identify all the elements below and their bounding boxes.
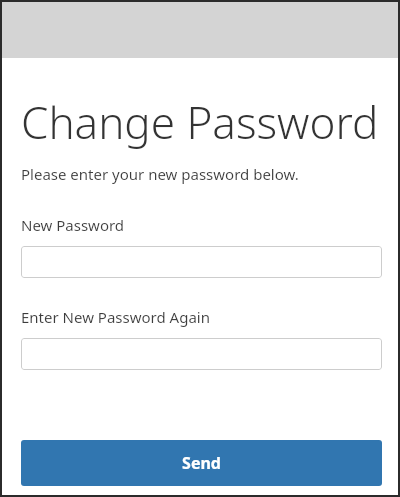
staticText: New Password <box>21 215 125 235</box>
staticText: Enter New Password Again <box>21 307 210 327</box>
staticText: Please enter your new password below. <box>21 164 299 184</box>
button[interactable]: New Password <box>21 246 382 278</box>
staticText: Send <box>182 452 221 474</box>
button[interactable]: Send <box>21 440 382 486</box>
staticText: Change Password <box>21 92 379 152</box>
button[interactable]: Enter New Password Again <box>21 338 382 370</box>
